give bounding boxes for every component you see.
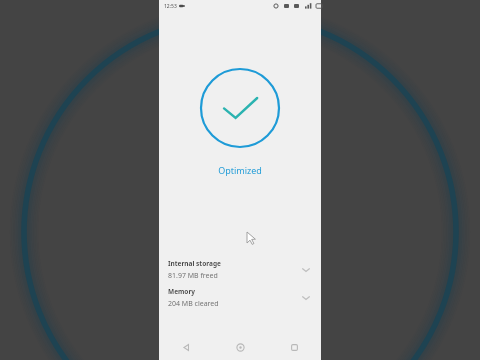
staticText: Internal storage bbox=[168, 259, 221, 268]
staticText: 12:53 bbox=[164, 3, 177, 10]
button[interactable]: Back bbox=[159, 334, 213, 360]
button[interactable]: Memory bbox=[159, 284, 321, 312]
button[interactable]: Internal storage bbox=[159, 256, 321, 284]
staticText: Optimized bbox=[159, 164, 321, 176]
other: Expand bbox=[300, 292, 312, 304]
staticText: 81.97 MB freed bbox=[168, 271, 218, 281]
staticText: 204 MB cleared bbox=[168, 299, 219, 309]
staticText: Memory bbox=[168, 287, 196, 296]
button[interactable]: Recents bbox=[267, 334, 321, 360]
other: Expand bbox=[300, 264, 312, 276]
button[interactable]: Home bbox=[213, 334, 267, 360]
